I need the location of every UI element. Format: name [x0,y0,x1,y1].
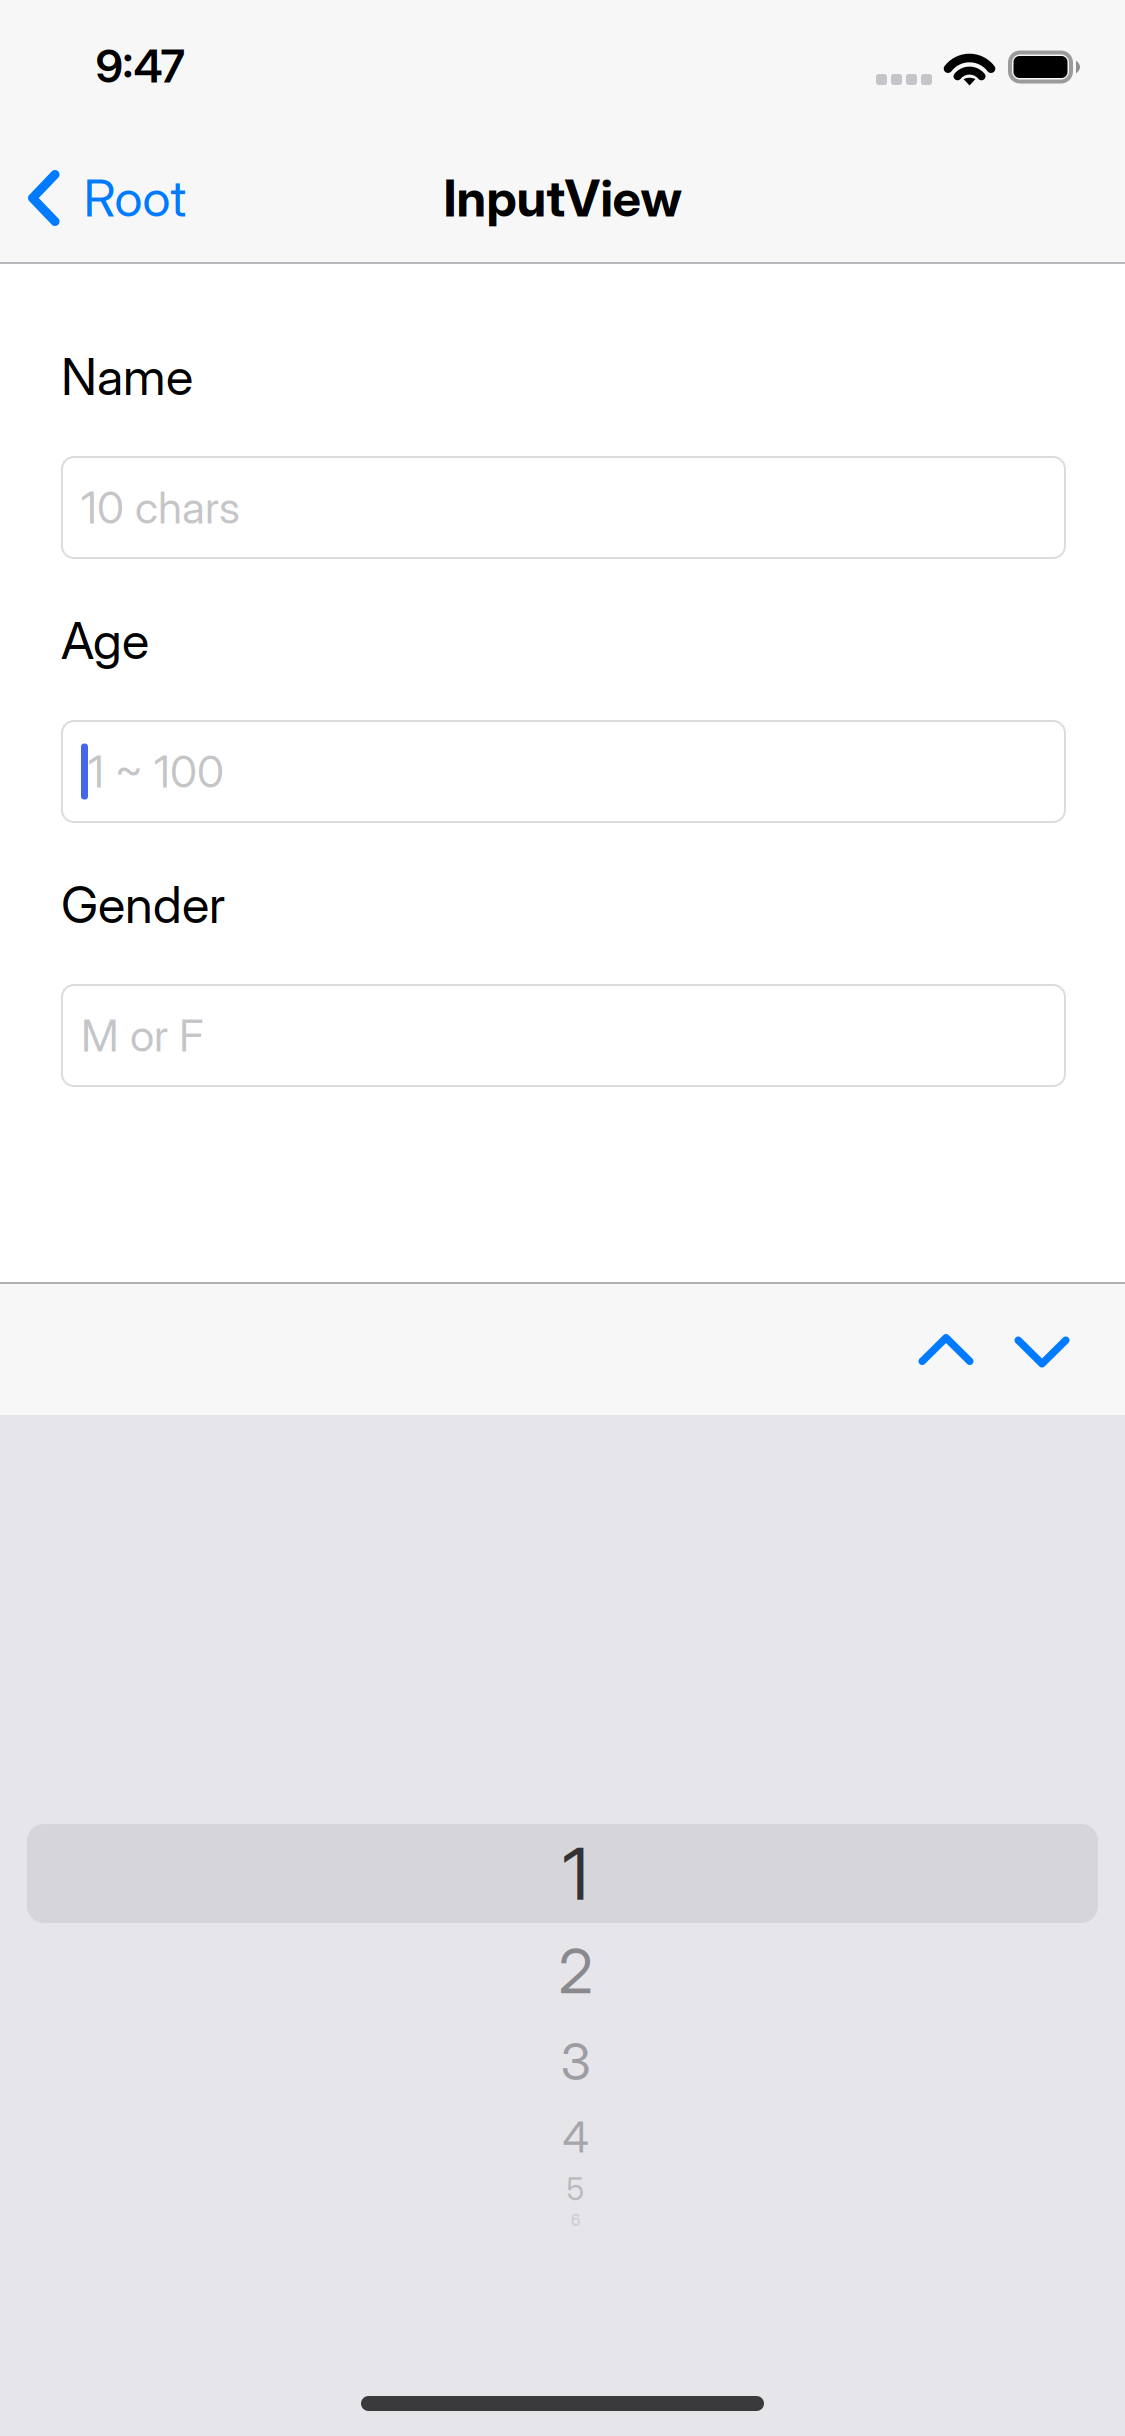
staticText: 5 [566,2170,584,2207]
staticText: 9:47 [95,39,184,93]
staticText: 1 [562,1830,588,1917]
staticText: Name [61,346,193,407]
button[interactable]: M or F [61,984,1066,1087]
staticText: Age [61,610,149,671]
button[interactable]: 10 chars [61,456,1066,559]
staticText: M or F [81,1009,203,1062]
button[interactable]: Next field [994,1281,1090,1417]
staticText: 3 [560,2031,590,2092]
button[interactable]: 1 ~ 100 [61,720,1066,823]
button[interactable]: Root [0,133,186,263]
button[interactable]: Previous field [898,1284,994,1415]
staticText: Root [83,167,186,229]
staticText: 4 [562,2111,588,2163]
staticText: InputView [443,167,681,229]
staticText: 2 [558,1934,592,2008]
staticText: 6 [571,2210,580,2230]
staticText: Gender [61,874,225,935]
staticText: 1 ~ 100 [88,745,224,798]
staticText: 10 chars [81,481,240,534]
